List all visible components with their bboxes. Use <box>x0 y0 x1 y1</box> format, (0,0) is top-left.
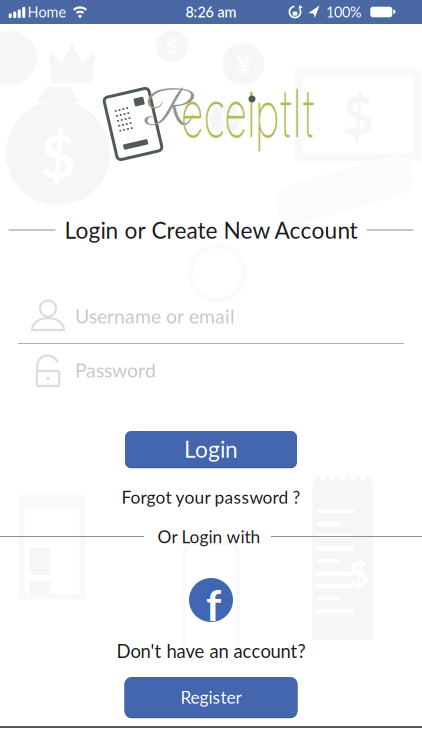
staticText: ¥ <box>235 48 250 80</box>
button[interactable]: Register <box>124 676 297 718</box>
staticText: Register <box>180 687 241 707</box>
staticText: Home <box>27 3 66 21</box>
staticText: $ <box>219 108 230 130</box>
button[interactable]: Password <box>36 348 422 392</box>
staticText: R <box>143 85 190 141</box>
staticText: $ <box>40 118 76 192</box>
button[interactable]: Username or email <box>32 294 422 338</box>
staticText: f <box>206 579 221 630</box>
staticText: Password <box>75 358 156 382</box>
staticText: Forgot your password ? <box>121 487 300 507</box>
button[interactable]: Forgot your password ? <box>121 487 300 507</box>
button[interactable]: Login <box>125 430 297 468</box>
staticText: 100% <box>326 3 362 21</box>
staticText: eceiptIt <box>132 68 363 155</box>
staticText: Or Login with <box>157 526 260 547</box>
staticText: Username or email <box>75 304 235 328</box>
staticText: Don't have an account? <box>116 640 305 662</box>
button[interactable]: Login with Facebook <box>189 578 233 622</box>
staticText: $ <box>349 552 369 594</box>
staticText: $ <box>342 83 373 147</box>
staticText: $ <box>166 34 178 58</box>
staticText: Login or Create New Account <box>64 216 357 244</box>
staticText: Login <box>184 435 238 463</box>
staticText: 8:26 am <box>185 3 236 21</box>
